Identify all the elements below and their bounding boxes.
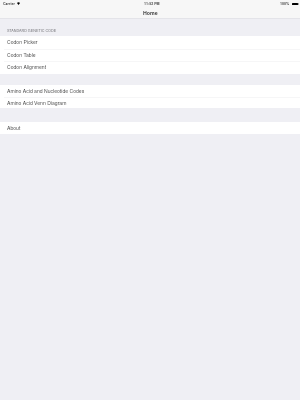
staticText: Amino Acid and Nucleotide Codes bbox=[7, 87, 85, 94]
button[interactable]: About bbox=[0, 122, 300, 134]
other: Battery bbox=[292, 3, 299, 5]
staticText: Codon Alignment bbox=[7, 63, 47, 70]
staticText: Codon Table bbox=[7, 51, 36, 58]
button[interactable]: Codon Alignment bbox=[0, 61, 300, 74]
staticText: 11:52 PM bbox=[144, 1, 160, 6]
staticText: 100% bbox=[280, 1, 290, 6]
staticText: Home bbox=[143, 9, 158, 17]
staticText: Codon Picker bbox=[7, 38, 38, 45]
button[interactable]: Codon Picker bbox=[0, 36, 300, 49]
button[interactable]: Codon Table bbox=[0, 49, 300, 62]
staticText: Amino Acid Venn Diagram bbox=[7, 99, 67, 106]
staticText: Carrier bbox=[3, 1, 15, 6]
button[interactable]: Amino Acid and Nucleotide Codes bbox=[0, 85, 300, 97]
button[interactable]: Amino Acid Venn Diagram bbox=[0, 97, 300, 109]
staticText: About bbox=[7, 124, 21, 131]
other: Wi-Fi bbox=[17, 2, 20, 5]
staticText: STANDARD GENETIC CODE bbox=[7, 28, 57, 33]
